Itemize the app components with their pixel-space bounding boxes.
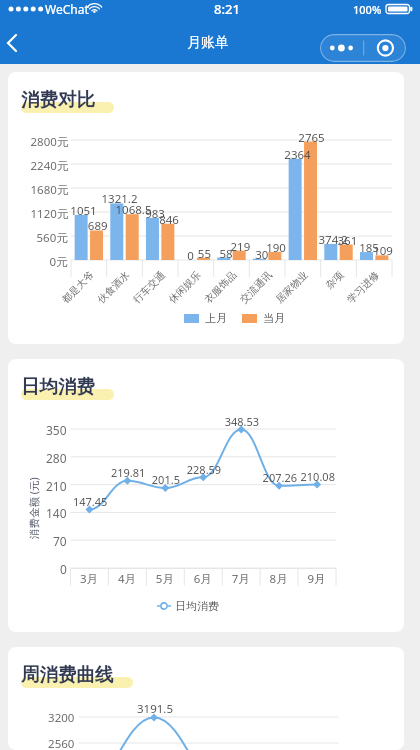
staticText: 当月 — [263, 311, 285, 325]
button[interactable]: Back — [0, 26, 29, 60]
staticText: 周消费曲线 — [21, 663, 114, 686]
staticText: 日均消费 — [21, 375, 95, 398]
staticText: 8:21 — [214, 0, 240, 18]
staticText: 100% — [353, 2, 382, 17]
staticText: WeChat — [45, 1, 89, 17]
staticText: 日均消费 — [175, 599, 219, 613]
button[interactable]: More options — [320, 34, 406, 62]
staticText: 消费对比 — [21, 88, 95, 111]
staticText: 月账单 — [187, 34, 229, 52]
staticText: 上月 — [205, 311, 227, 325]
